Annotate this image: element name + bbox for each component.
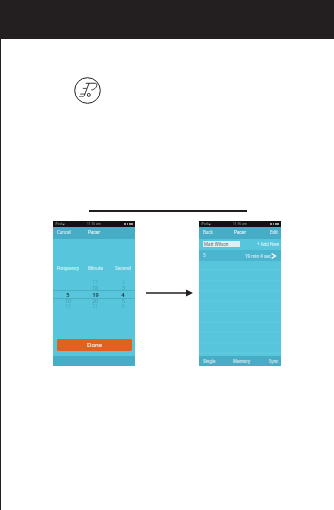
staticText: 11:16 am <box>87 222 101 226</box>
button[interactable]: Edit <box>270 229 278 235</box>
staticText: 17 <box>92 279 98 286</box>
staticText: 10 <box>65 298 71 305</box>
staticText: 15 <box>65 303 71 310</box>
staticText: 19 <box>92 291 99 299</box>
staticText: 5 <box>203 252 206 259</box>
other: leads to <box>146 287 193 299</box>
staticText: Pacer <box>88 229 101 235</box>
staticText: 11:16 am <box>233 222 247 226</box>
staticText: Done <box>87 341 103 349</box>
staticText: iPod <box>201 222 208 226</box>
staticText: 6 <box>122 303 125 310</box>
staticText: 4 <box>121 291 125 299</box>
staticText: Frequency <box>57 265 79 271</box>
staticText: Second <box>115 265 131 271</box>
staticText: 20 <box>92 298 98 305</box>
button[interactable]: Matt Wilson <box>203 241 240 247</box>
staticText: 21 <box>92 303 98 310</box>
staticText: Sync <box>269 358 279 364</box>
staticText: Pacer <box>234 229 247 235</box>
button[interactable]: Memory <box>232 356 252 366</box>
button[interactable]: Cancel <box>57 229 71 235</box>
staticText: iPod <box>55 222 62 226</box>
staticText: Matt Wilson <box>204 241 229 247</box>
other: Open pace details <box>271 253 276 259</box>
staticText: 5 <box>122 298 125 305</box>
button[interactable]: Single <box>201 356 218 366</box>
staticText: Memory <box>233 358 251 364</box>
button[interactable]: 5 <box>199 250 281 261</box>
staticText: 3 <box>122 285 125 292</box>
staticText: 2 <box>122 279 125 286</box>
button[interactable]: + Add New <box>257 241 280 247</box>
button[interactable]: Done <box>57 339 132 351</box>
button[interactable]: Back <box>203 229 213 235</box>
staticText: 5 <box>66 291 70 299</box>
button[interactable]: Sync <box>266 356 281 366</box>
staticText: 19 min 4 sec <box>245 253 271 259</box>
staticText: Single <box>203 358 216 364</box>
button[interactable]: Pacer logo <box>74 77 101 104</box>
staticText: 18 <box>92 285 98 292</box>
staticText: Minute <box>88 265 103 271</box>
